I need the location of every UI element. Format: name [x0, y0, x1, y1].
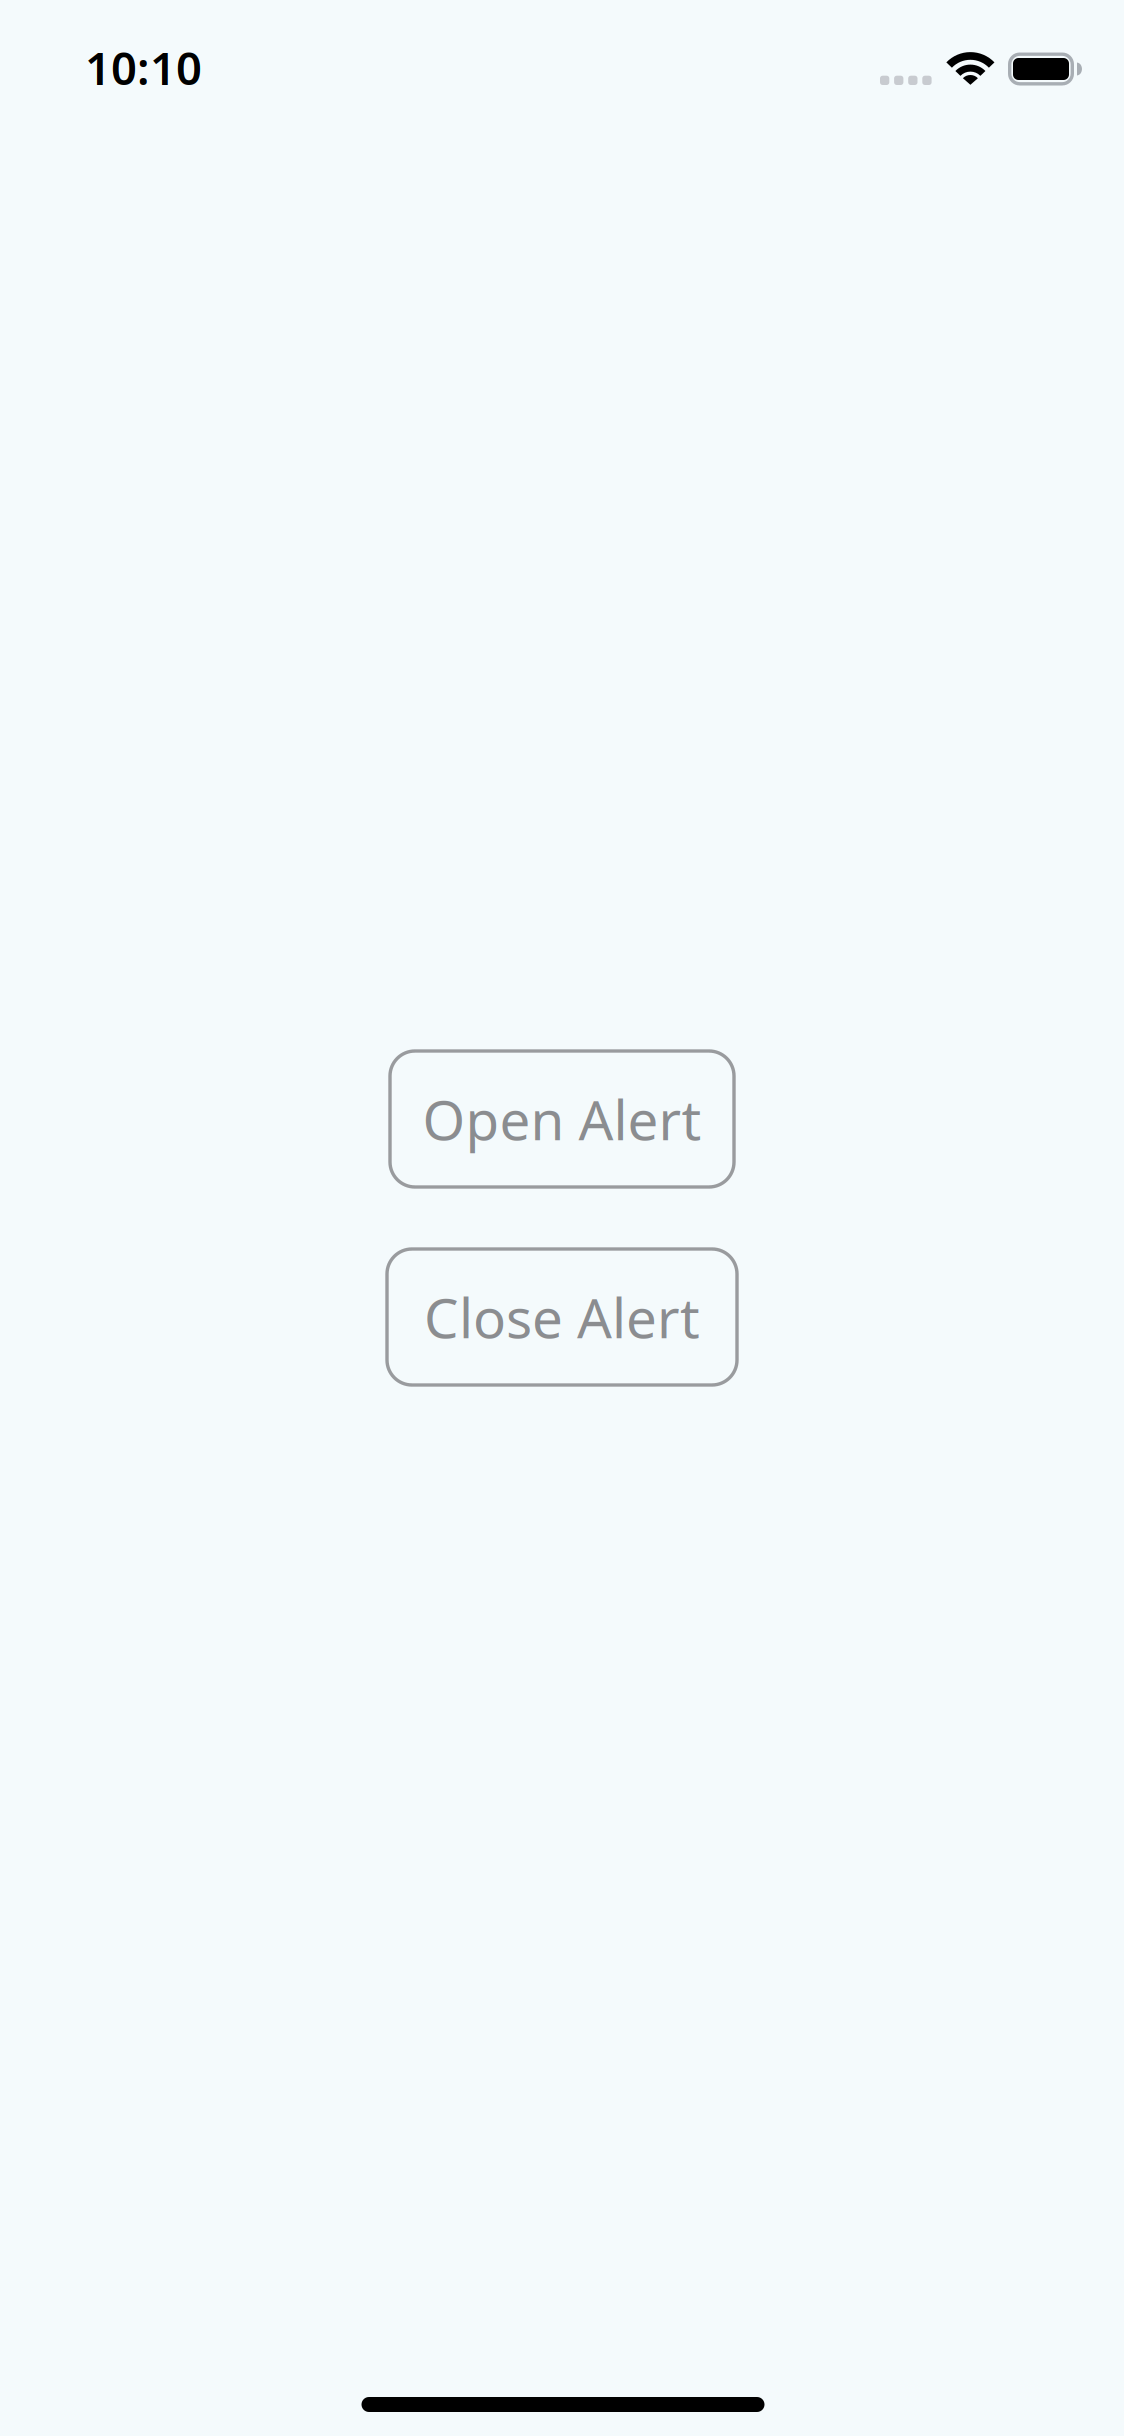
button[interactable]: Close Alert [387, 1249, 737, 1385]
button[interactable]: Open Alert [390, 1051, 734, 1187]
staticText: 10:10 [85, 37, 202, 98]
staticText: Close Alert [424, 1281, 700, 1353]
staticText: Open Alert [422, 1083, 701, 1155]
